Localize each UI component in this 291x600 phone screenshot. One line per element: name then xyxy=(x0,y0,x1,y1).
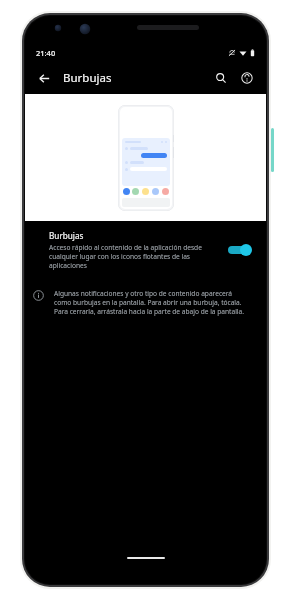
other: Power button xyxy=(271,128,274,172)
staticText: 21:40 xyxy=(36,48,56,58)
button[interactable]: Atrás xyxy=(31,65,57,91)
staticText: Burbujas xyxy=(63,70,112,86)
button[interactable]: Ayuda xyxy=(234,65,260,91)
button[interactable]: Burbujas xyxy=(25,221,266,279)
staticText: Algunas notificaciones y otro tipo de co… xyxy=(54,289,246,316)
button[interactable]: Activar burbujas xyxy=(224,239,254,261)
staticText: Burbujas xyxy=(49,230,84,241)
button[interactable]: Buscar xyxy=(208,65,234,91)
staticText: Acceso rápido al contenido de la aplicac… xyxy=(49,243,216,270)
